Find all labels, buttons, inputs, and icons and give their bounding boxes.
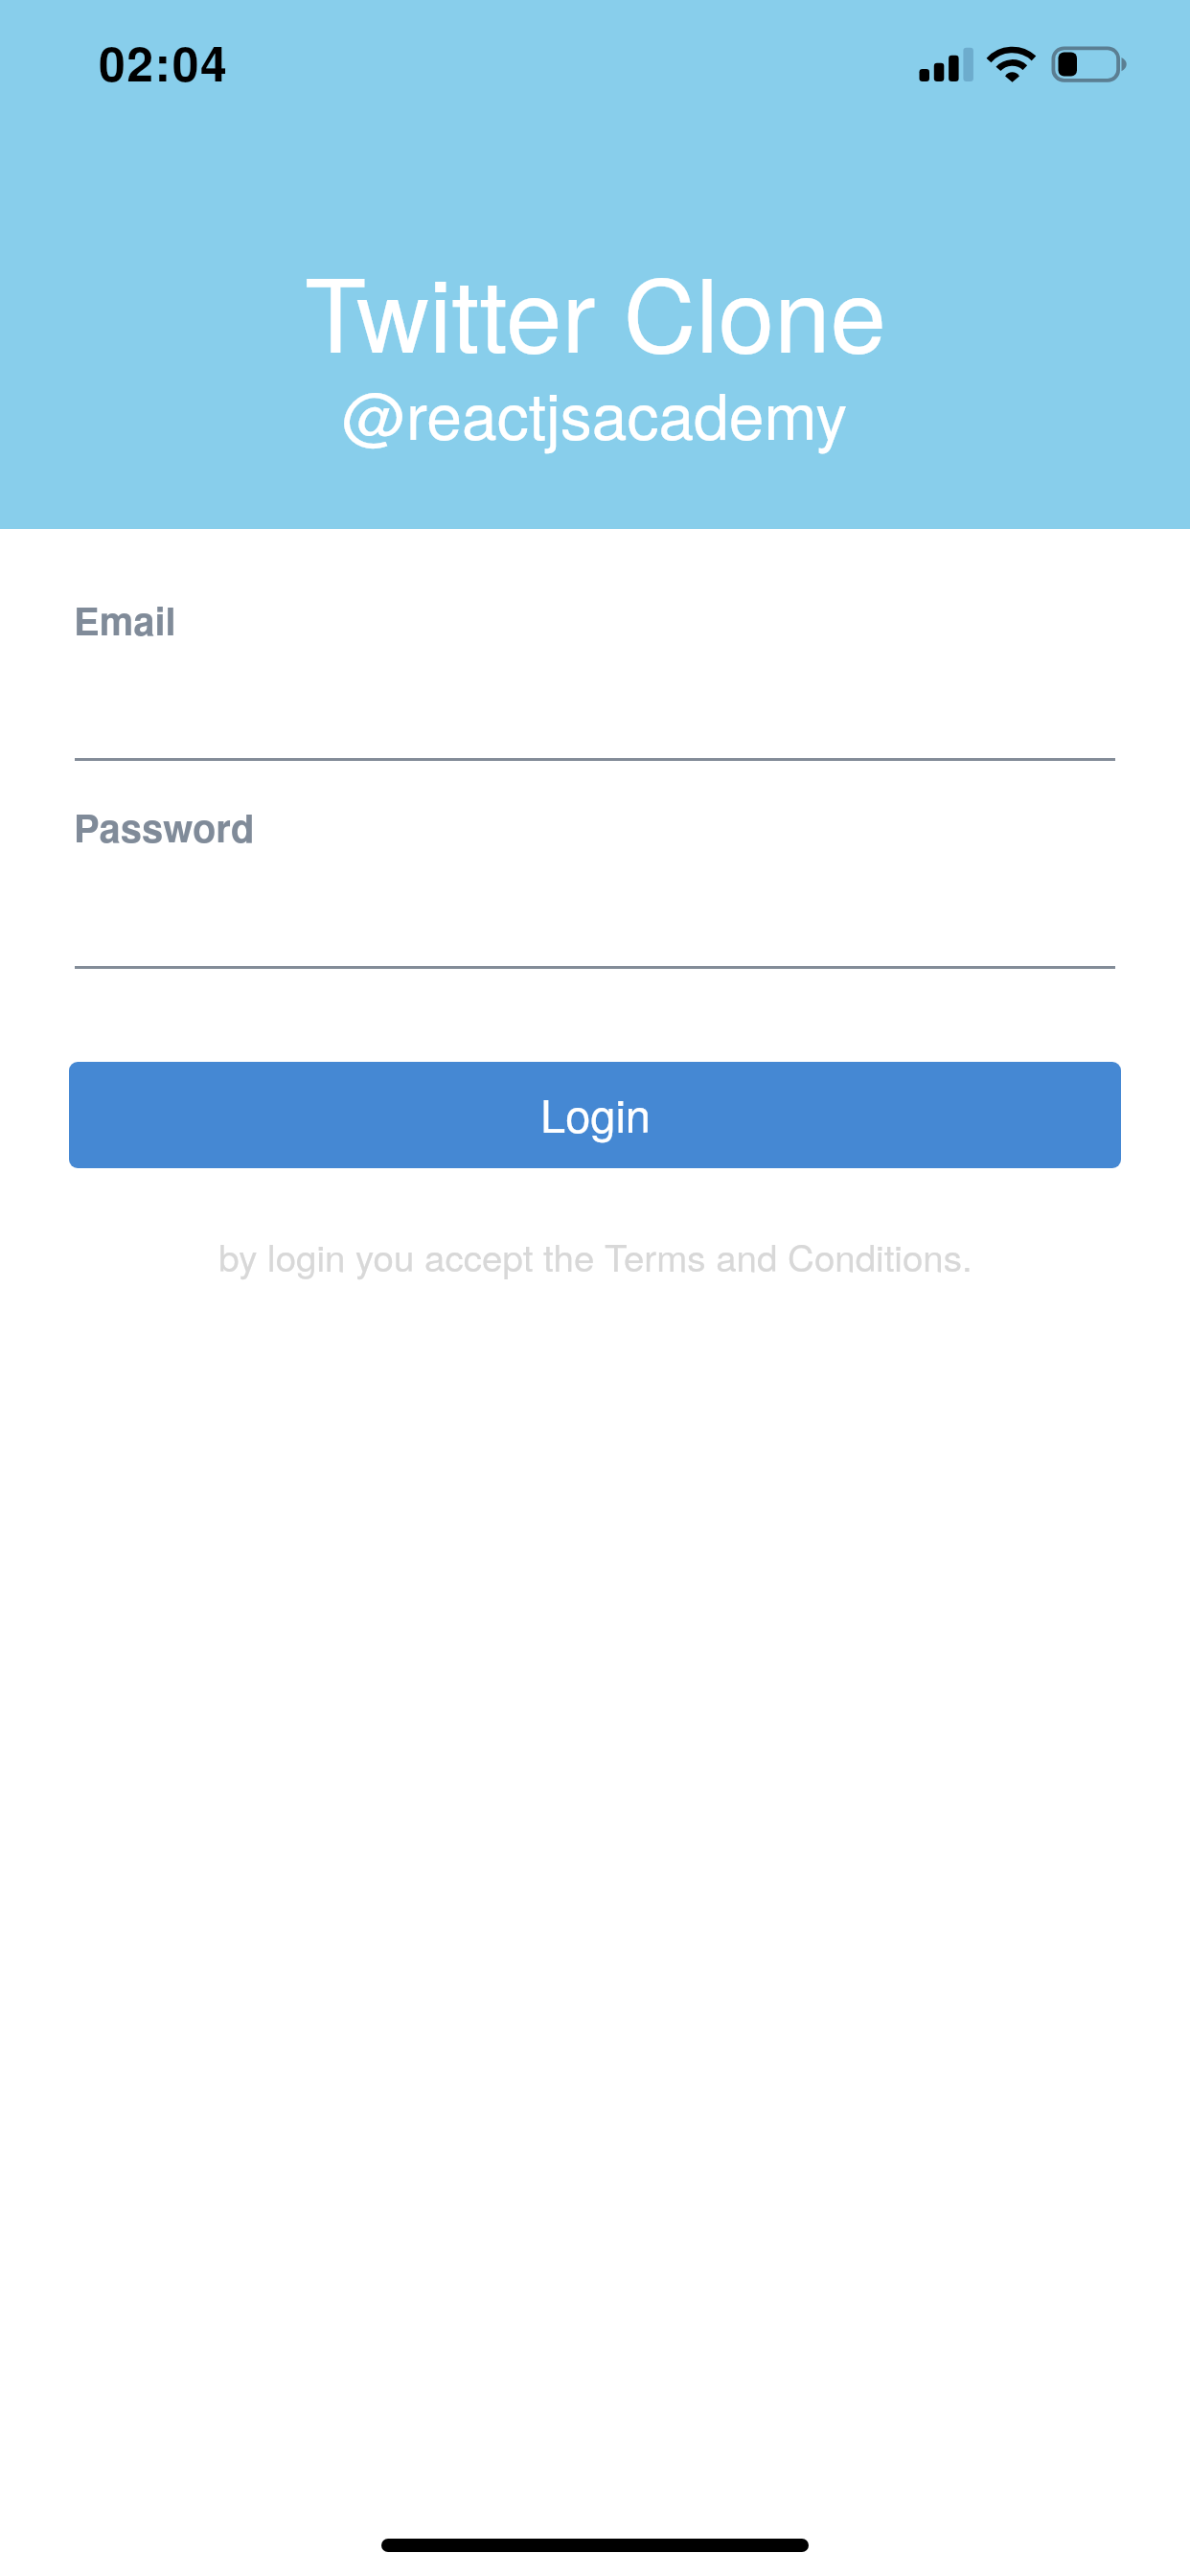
staticText: Password: [74, 799, 255, 854]
button[interactable]: Password: [0, 783, 1190, 969]
button[interactable]: Email: [0, 576, 1190, 761]
staticText: 02:04: [99, 28, 229, 97]
other: Cellular signal, Wi-Fi and battery statu…: [918, 44, 1131, 84]
staticText: by login you accept the Terms and Condit…: [218, 1230, 973, 1282]
button[interactable]: by login you accept the Terms and Condit…: [0, 1219, 1190, 1282]
staticText: Login: [540, 1081, 651, 1145]
staticText: Email: [74, 592, 176, 647]
staticText: Twitter Clone: [305, 237, 886, 380]
button[interactable]: Login: [69, 1062, 1121, 1168]
staticText: @reactjsacademy: [342, 367, 848, 458]
